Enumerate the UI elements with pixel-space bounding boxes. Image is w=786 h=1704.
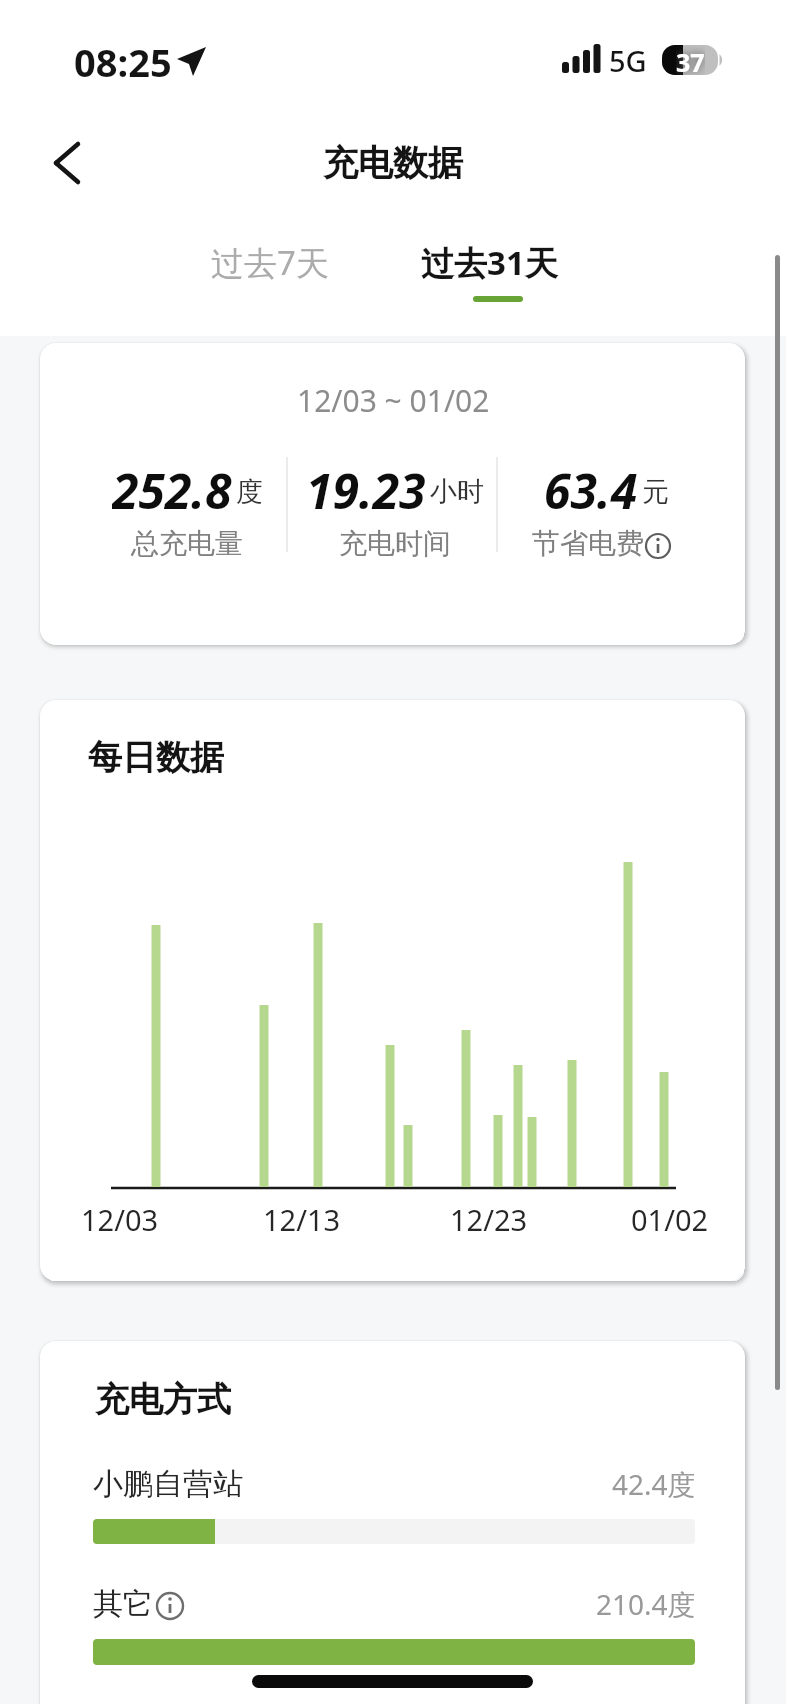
staticText: 63.4 <box>544 458 638 514</box>
staticText: 每日数据 <box>88 736 224 778</box>
staticText: 19.23 <box>306 458 426 514</box>
staticText: 42.4度 <box>612 1465 696 1503</box>
staticText: 度 <box>236 475 263 509</box>
staticText: 12/13 <box>263 1200 341 1236</box>
staticText: 元 <box>642 475 669 509</box>
staticText: 12/03 <box>81 1200 159 1236</box>
staticText: 37 <box>676 45 705 75</box>
staticText: 节省电费 <box>532 526 644 561</box>
button[interactable]: 过去31天 <box>409 234 569 290</box>
staticText: 其它 <box>93 1585 153 1623</box>
staticText: 小时 <box>430 475 484 509</box>
button[interactable]: 过去7天 <box>190 234 350 290</box>
staticText: 充电时间 <box>339 526 451 561</box>
staticText: 小鹏自营站 <box>93 1465 243 1503</box>
staticText: 充电方式 <box>95 1378 231 1421</box>
button[interactable] <box>40 133 100 193</box>
staticText: 充电数据 <box>323 141 463 185</box>
button[interactable] <box>151 1587 189 1625</box>
staticText: 过去7天 <box>211 240 329 285</box>
button[interactable]: 其它 <box>93 1584 293 1624</box>
staticText: 210.4度 <box>596 1585 696 1623</box>
staticText: 08:25 <box>74 36 172 84</box>
staticText: 5G <box>609 41 647 80</box>
staticText: 12/03 ~ 01/02 <box>297 380 490 420</box>
staticText: 过去31天 <box>421 240 558 285</box>
staticText: 总充电量 <box>131 526 243 561</box>
staticText: 12/23 <box>450 1200 528 1236</box>
staticText: 252.8 <box>112 458 232 514</box>
staticText: 01/02 <box>631 1200 709 1236</box>
button[interactable] <box>640 528 678 566</box>
